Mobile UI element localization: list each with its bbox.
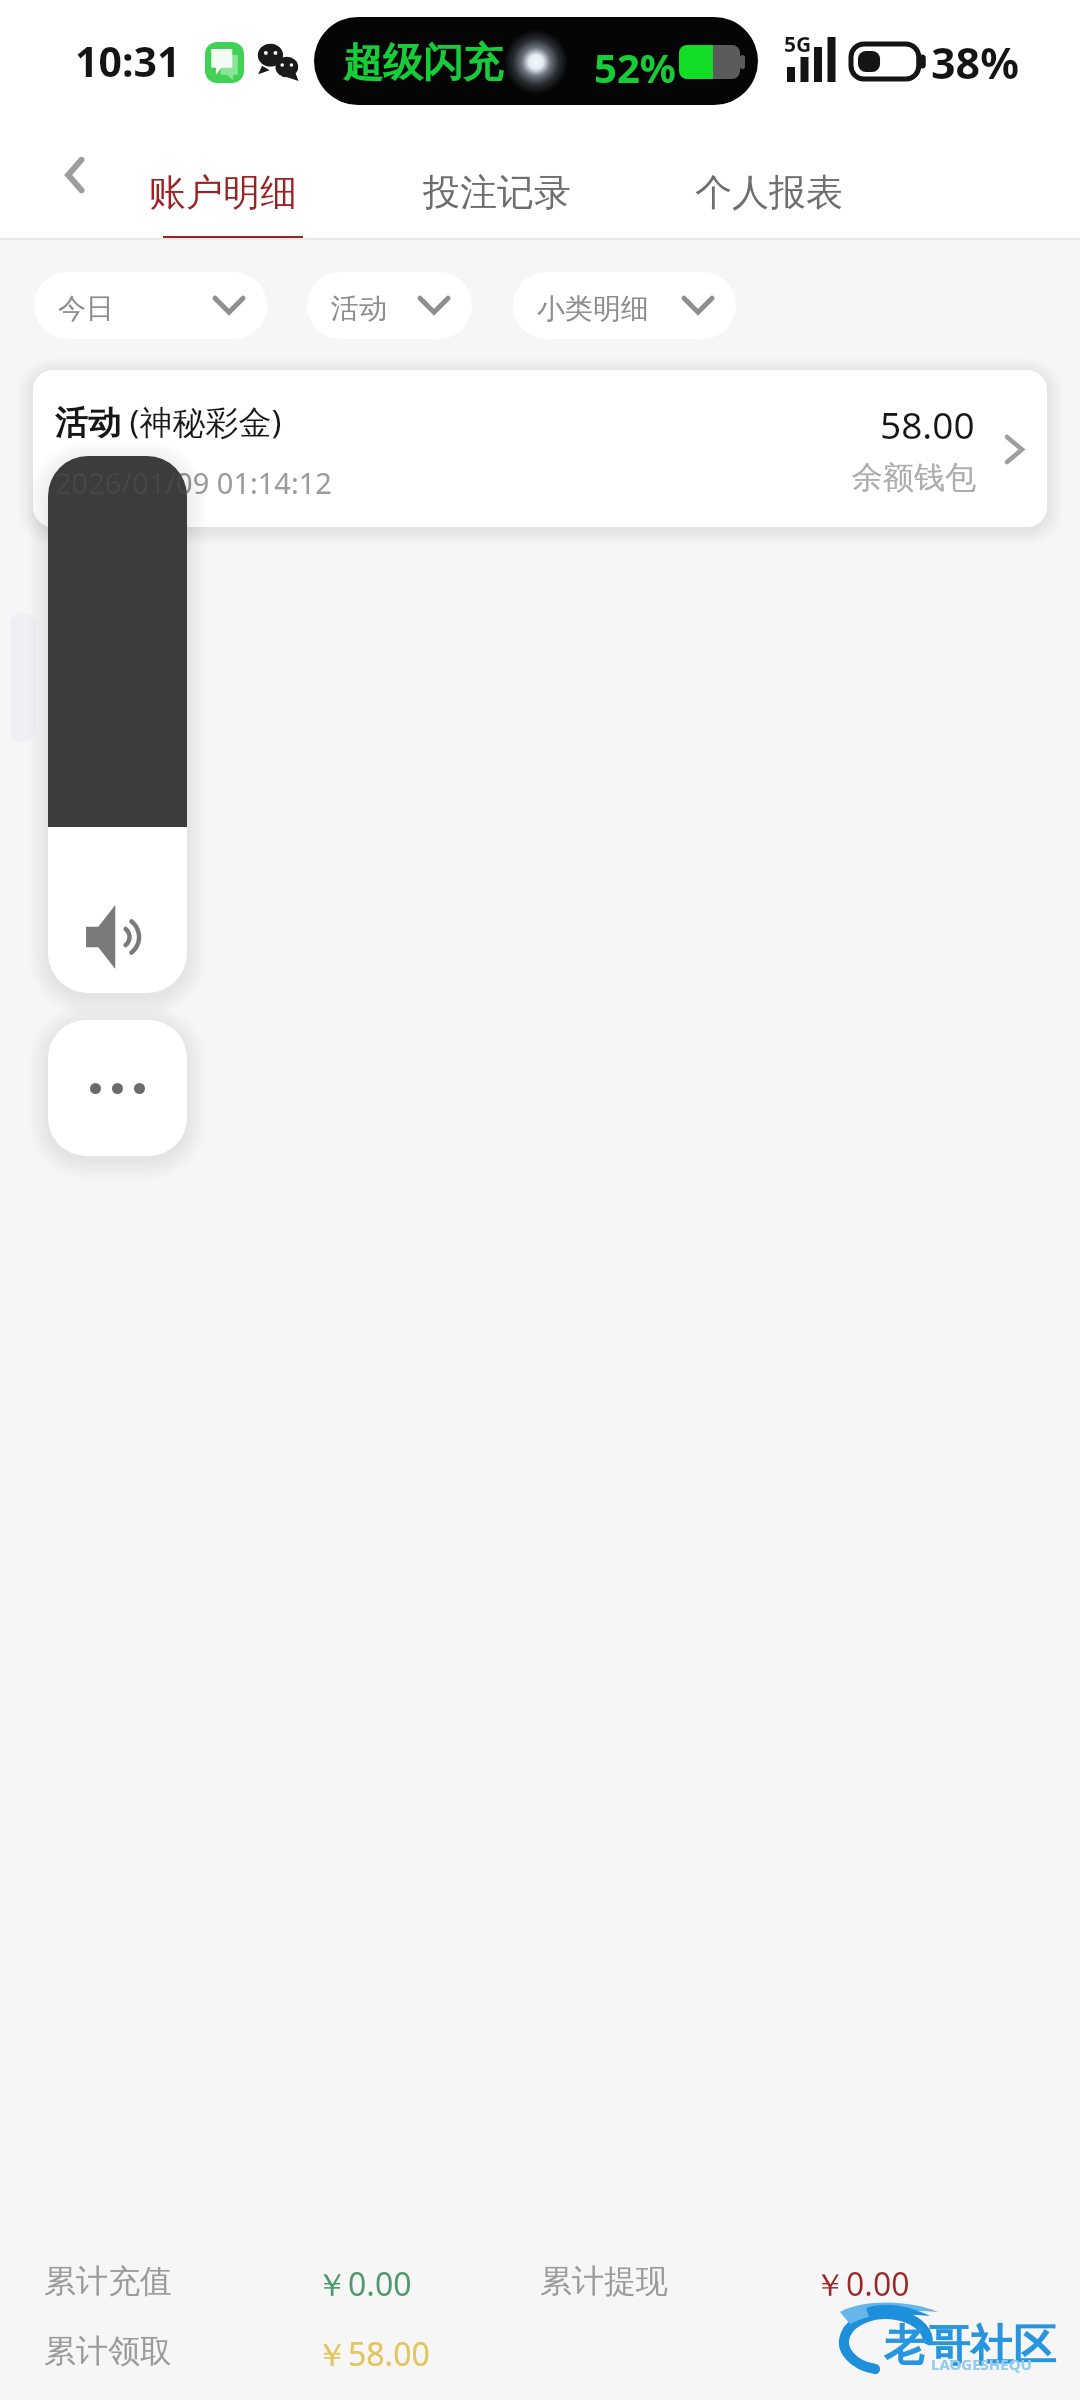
- staticText: 账户明细: [149, 169, 297, 216]
- button[interactable]: Media volume: [48, 456, 187, 993]
- staticText: 个人报表: [695, 169, 843, 216]
- staticText: 累计充值: [44, 2261, 172, 2301]
- staticText: 累计领取: [44, 2331, 172, 2371]
- staticText: LAOGESHEQU: [931, 2354, 1032, 2374]
- staticText: ￥0.00: [814, 2262, 910, 2306]
- button[interactable]: 个人报表: [669, 144, 869, 238]
- button[interactable]: 今日: [34, 272, 267, 339]
- staticText: 超级闪充: [343, 37, 503, 87]
- button[interactable]: 活动: [307, 272, 472, 339]
- button[interactable]: 账户明细: [123, 144, 323, 238]
- staticText: 活动: [331, 291, 387, 326]
- button[interactable]: 小类明细: [513, 272, 736, 339]
- staticText: (神秘彩金): [121, 399, 282, 444]
- staticText: 投注记录: [423, 169, 571, 216]
- staticText: 小类明细: [537, 291, 649, 326]
- staticText: 10:31: [75, 33, 181, 89]
- button[interactable]: More options: [48, 1020, 187, 1156]
- staticText: ￥0.00: [316, 2262, 412, 2306]
- staticText: 活动: [55, 402, 121, 444]
- staticText: 老哥社区: [884, 2319, 1056, 2373]
- staticText: 52%: [594, 40, 676, 94]
- button[interactable]: 活动: [33, 370, 1047, 527]
- staticText: 5G: [784, 30, 812, 59]
- staticText: 今日: [58, 291, 114, 326]
- staticText: 2026/01/09 01:14:12: [55, 463, 187, 502]
- staticText: 38%: [931, 33, 1019, 92]
- button[interactable]: Back: [34, 133, 118, 217]
- staticText: 累计提现: [540, 2261, 668, 2301]
- staticText: 58.00: [880, 399, 975, 449]
- staticText: ￥58.00: [316, 2332, 430, 2376]
- staticText: 2026/01/09 01:14:12: [55, 463, 332, 502]
- button[interactable]: 投注记录: [397, 144, 597, 238]
- staticText: 余额钱包: [852, 458, 976, 497]
